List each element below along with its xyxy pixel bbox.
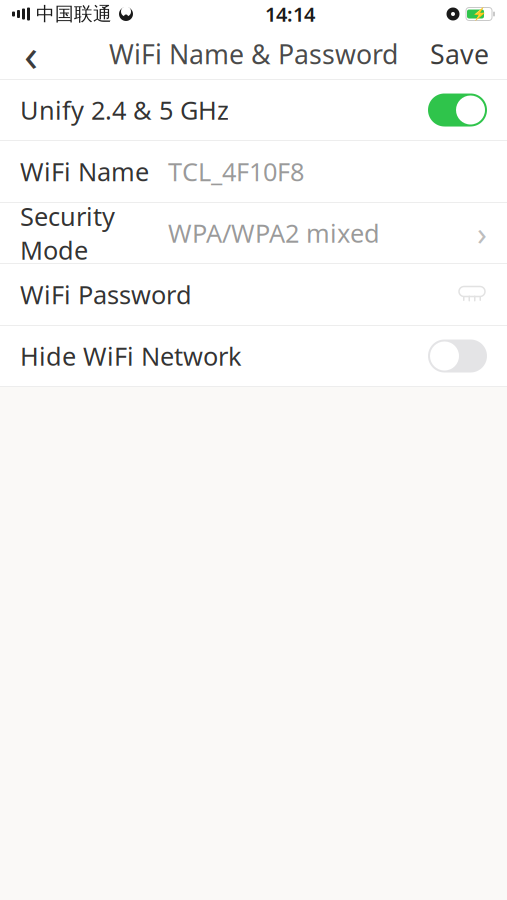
button[interactable]: WiFi Password bbox=[0, 264, 507, 325]
staticText: WiFi Name bbox=[20, 155, 149, 188]
button[interactable]: Unify 2.4 & 5 GHz bbox=[0, 80, 507, 140]
button[interactable]: WiFi Name bbox=[0, 141, 507, 202]
staticText: TCL_4F10F8 bbox=[168, 155, 304, 188]
staticText: WiFi Password bbox=[20, 278, 192, 311]
staticText: WiFi Name & Password bbox=[109, 36, 398, 72]
staticText: ‹ bbox=[24, 24, 38, 84]
staticText: 中国联通 bbox=[36, 2, 112, 25]
staticText: ⚡ bbox=[471, 7, 486, 21]
staticText: WPA/WPA2 mixed bbox=[168, 216, 380, 250]
staticText: Unify 2.4 & 5 GHz bbox=[20, 93, 229, 127]
button[interactable]: Save bbox=[412, 28, 507, 80]
staticText: 14:14 bbox=[265, 1, 315, 27]
staticText: Security Mode bbox=[20, 199, 115, 267]
staticText: Hide WiFi Network bbox=[20, 339, 242, 373]
staticText: Save bbox=[430, 36, 489, 72]
button[interactable]: Back bbox=[0, 28, 62, 80]
button[interactable]: Hide WiFi Network bbox=[0, 326, 507, 386]
staticText: › bbox=[477, 212, 487, 254]
button[interactable]: Security Mode bbox=[0, 203, 507, 263]
